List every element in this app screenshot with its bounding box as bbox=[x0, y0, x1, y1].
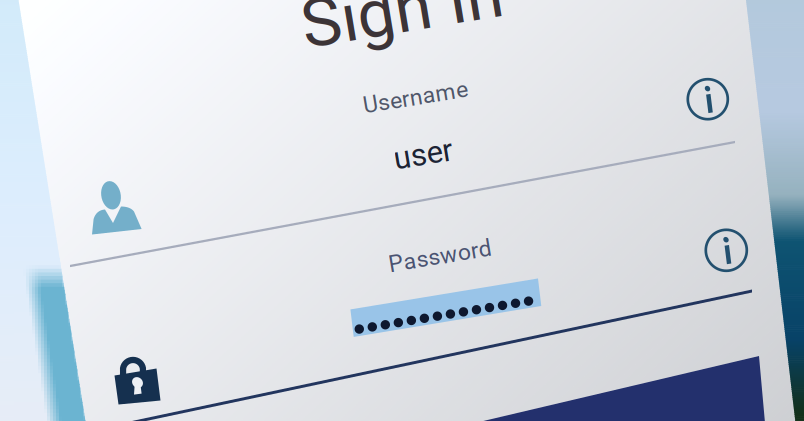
button[interactable]: Username bbox=[362, 83, 468, 111]
staticText: user bbox=[393, 136, 452, 173]
staticText: Username bbox=[362, 83, 468, 111]
button[interactable]: Sign In bbox=[0, 0, 804, 421]
button[interactable]: Username info bbox=[688, 79, 728, 119]
button[interactable]: Password bbox=[388, 242, 492, 270]
staticText: Password bbox=[388, 242, 492, 270]
button[interactable]: Password info bbox=[706, 230, 747, 271]
button[interactable]: Password field bbox=[0, 0, 804, 421]
staticText: Sign In bbox=[300, 0, 503, 48]
button[interactable]: user bbox=[393, 136, 452, 173]
